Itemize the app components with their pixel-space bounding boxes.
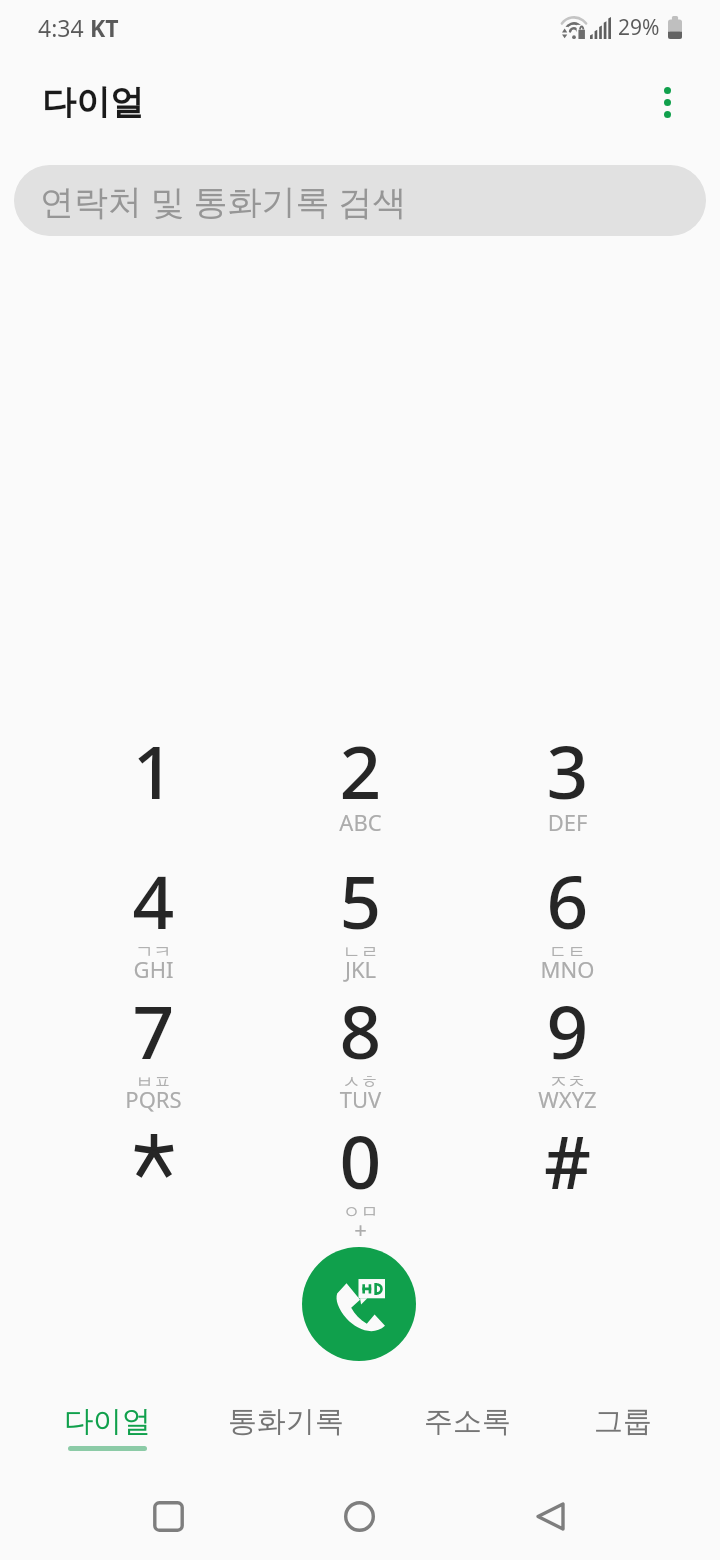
button[interactable]: 연락처 및 통화기록 검색	[14, 165, 706, 236]
staticText: ㅂㅍ	[50, 1071, 257, 1094]
button[interactable]: 6	[464, 851, 671, 981]
button[interactable]: 3	[464, 721, 671, 851]
button[interactable]: 다이얼	[22, 1384, 192, 1464]
staticText: DEF	[464, 807, 671, 837]
button[interactable]: 통화기록	[200, 1384, 372, 1464]
button[interactable]: Recents	[123, 1472, 213, 1560]
button[interactable]: 0	[257, 1111, 464, 1241]
staticText: 0	[257, 1111, 464, 1210]
staticText: GHI	[50, 954, 257, 984]
button[interactable]: 주소록	[382, 1384, 552, 1464]
staticText: 29%	[618, 13, 660, 42]
staticText: 4	[50, 851, 257, 950]
staticText: PQRS	[50, 1084, 257, 1114]
button[interactable]: 그룹	[552, 1384, 694, 1464]
staticText: ㅅㅎ	[257, 1071, 464, 1094]
staticText: ㅇㅁ	[257, 1201, 464, 1224]
staticText: +	[257, 1214, 464, 1244]
button[interactable]: #	[464, 1111, 671, 1241]
staticText: WXYZ	[464, 1084, 671, 1114]
button[interactable]: 9	[464, 981, 671, 1111]
staticText: 8	[257, 981, 464, 1080]
button[interactable]: Home	[314, 1472, 404, 1560]
button[interactable]: Call	[302, 1247, 416, 1361]
button[interactable]: More options	[637, 72, 697, 132]
staticText: JKL	[257, 954, 464, 984]
button[interactable]: 4	[50, 851, 257, 981]
staticText: ㄱㅋ	[50, 941, 257, 964]
staticText: ㅈㅊ	[464, 1071, 671, 1094]
staticText: 1	[50, 721, 257, 820]
staticText: ㄷㅌ	[464, 941, 671, 964]
staticText: ㄴㄹ	[257, 941, 464, 964]
staticText: 4:34	[38, 12, 90, 43]
staticText: 9	[464, 981, 671, 1080]
staticText: MNO	[464, 954, 671, 984]
staticText: 3	[464, 721, 671, 820]
staticText: 다이얼	[64, 1403, 151, 1440]
button[interactable]: Back	[505, 1472, 595, 1560]
button[interactable]: 5	[257, 851, 464, 981]
button[interactable]	[50, 1111, 257, 1241]
staticText: 7	[50, 981, 257, 1080]
button[interactable]: 8	[257, 981, 464, 1111]
staticText: 다이얼	[42, 81, 144, 124]
button[interactable]: 2	[257, 721, 464, 851]
staticText: 6	[464, 851, 671, 950]
staticText: KT	[90, 12, 119, 43]
staticText: ABC	[257, 807, 464, 837]
staticText: 그룹	[594, 1403, 652, 1440]
staticText: 연락처 및 통화기록 검색	[40, 178, 407, 224]
button[interactable]: 1	[50, 721, 257, 851]
staticText: 통화기록	[228, 1403, 344, 1440]
staticText: 5	[257, 851, 464, 950]
staticText: #	[464, 1111, 671, 1210]
staticText: 주소록	[424, 1403, 511, 1440]
button[interactable]: 7	[50, 981, 257, 1111]
staticText: TUV	[257, 1084, 464, 1114]
staticText: 2	[257, 721, 464, 820]
